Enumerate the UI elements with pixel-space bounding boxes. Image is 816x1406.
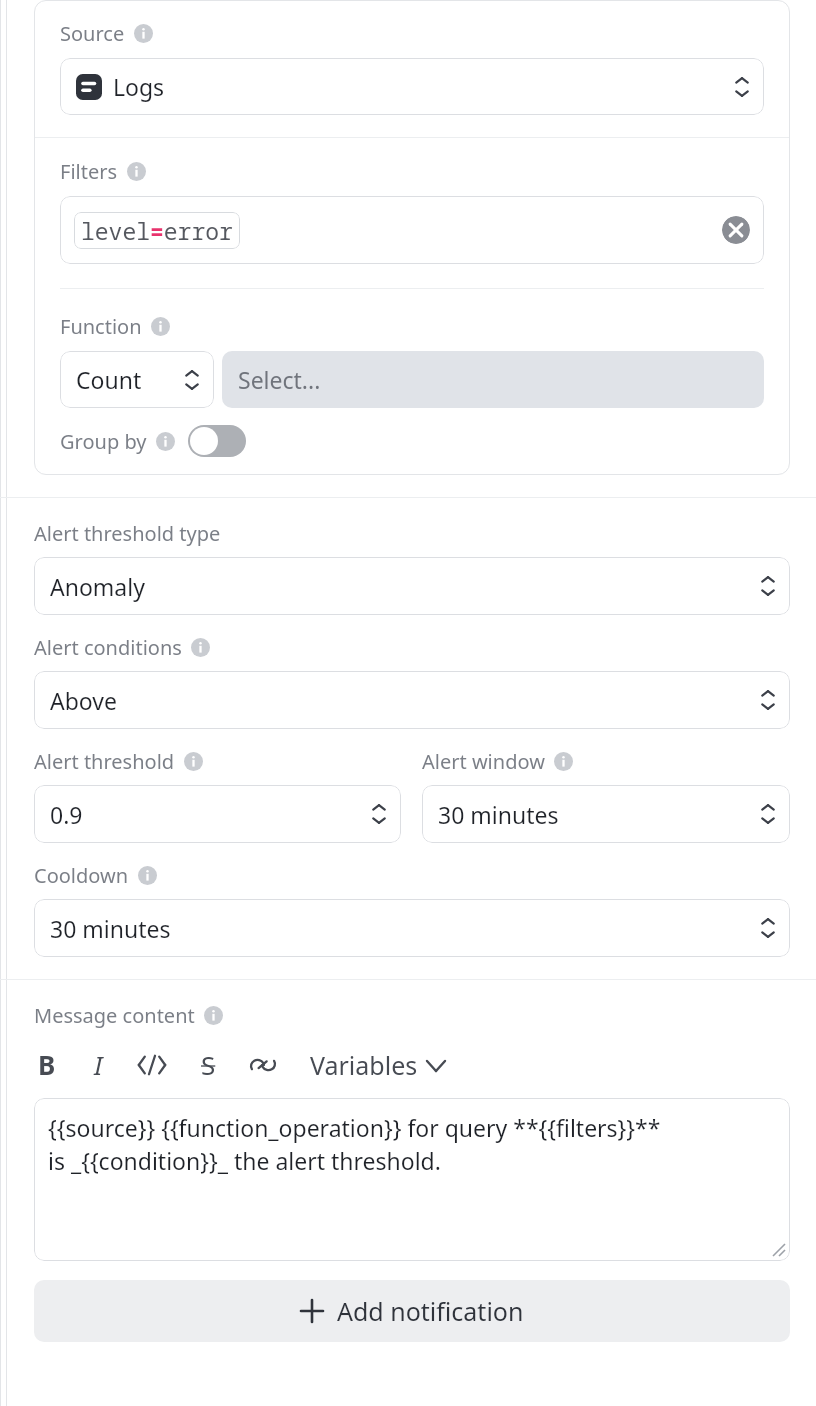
button[interactable]: {{source}} {{function_operation}} for qu… [34,1098,790,1261]
button[interactable]: level=error [60,196,764,264]
staticText: {{source}} {{function_operation}} for qu… [48,1112,661,1177]
staticText: Select... [238,364,750,395]
staticText: S [201,1047,216,1082]
staticText: 0.9 [50,799,371,830]
staticText: Alert threshold type [34,520,221,547]
button[interactable]: Italic [90,1043,107,1086]
button[interactable]: 0.9 [34,785,401,843]
staticText: Cooldown [34,862,129,889]
staticText: 30 minutes [50,913,760,944]
staticText: B [38,1047,56,1082]
button[interactable]: 30 minutes [34,899,790,957]
button[interactable]: 30 minutes [422,785,790,843]
staticText: Source [60,20,125,47]
staticText: Logs [113,71,734,102]
staticText: Filters [60,158,118,185]
staticText: Variables [310,1048,418,1082]
staticText: Anomaly [50,571,760,602]
staticText: Function [60,313,142,340]
staticText: level=error [81,215,233,246]
button[interactable]: Code [133,1050,171,1080]
staticText: Message content [34,1002,195,1029]
staticText: Add notification [337,1294,524,1328]
button[interactable]: Group by toggle [188,425,246,457]
staticText: 30 minutes [438,799,760,830]
button[interactable]: Strikethrough [197,1043,220,1086]
button[interactable]: Bold [34,1043,60,1086]
button[interactable]: Select... [222,351,764,408]
button[interactable]: Link [246,1048,280,1082]
staticText: Above [50,685,760,716]
button[interactable]: Above [34,671,790,729]
staticText: Alert conditions [34,634,182,661]
button[interactable]: Add notification [34,1280,790,1342]
button[interactable]: Variables [306,1044,449,1086]
staticText: I [94,1047,103,1082]
staticText: Alert threshold [34,748,175,775]
button[interactable]: Anomaly [34,557,790,615]
staticText: Alert window [422,748,545,775]
button[interactable]: Count [60,351,214,408]
button[interactable]: Logs [60,58,764,115]
staticText: Group by [60,428,147,455]
staticText: Count [76,364,184,395]
button[interactable]: level=error [74,212,240,249]
button[interactable]: Clear filters [722,216,750,244]
